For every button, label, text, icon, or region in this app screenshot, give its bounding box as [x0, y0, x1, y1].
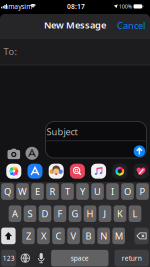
button[interactable]: App Store	[27, 164, 42, 179]
button[interactable]: V	[67, 228, 80, 244]
button[interactable]: Camera	[6, 147, 21, 159]
staticText: Q	[4, 185, 11, 198]
staticText: amaysim	[4, 2, 32, 11]
button[interactable]: Dictate	[37, 253, 45, 264]
button[interactable]: Space	[51, 250, 108, 266]
staticText: M	[115, 230, 123, 242]
button[interactable]: R	[46, 183, 59, 200]
button[interactable]: Music	[91, 164, 106, 178]
staticText: 08:17	[67, 2, 85, 11]
staticText: O	[124, 185, 131, 198]
button[interactable]: F	[54, 205, 66, 222]
staticText: V	[71, 230, 77, 242]
button[interactable]: Next keyboard	[20, 253, 30, 263]
button[interactable]: Return	[114, 250, 149, 266]
button[interactable]: K	[114, 205, 126, 222]
button[interactable]: T	[61, 183, 74, 200]
button[interactable]: Numbers	[1, 250, 16, 266]
button[interactable]: Cancel	[117, 19, 145, 32]
staticText: R	[49, 185, 55, 198]
button[interactable]: X	[37, 228, 50, 244]
button[interactable]: M	[112, 228, 125, 244]
staticText: K	[117, 207, 123, 220]
button[interactable]: W	[16, 183, 29, 200]
button[interactable]: B	[82, 228, 95, 244]
staticText: X	[41, 230, 46, 242]
staticText: L	[132, 207, 137, 220]
staticText: T	[65, 185, 70, 198]
button[interactable]: Send	[134, 145, 145, 157]
button[interactable]: To	[0, 39, 150, 65]
staticText: return	[122, 254, 142, 263]
button[interactable]: G	[69, 205, 81, 222]
staticText: P	[139, 185, 145, 198]
staticText: H	[86, 207, 93, 220]
staticText: Cancel	[117, 19, 145, 32]
button[interactable]: Delete	[134, 228, 149, 244]
staticText: To:	[3, 45, 17, 57]
button[interactable]: Digital Touch	[134, 164, 148, 178]
staticText: G	[71, 207, 78, 220]
button[interactable]: Fitness	[112, 164, 127, 179]
button[interactable]: A	[9, 205, 21, 222]
button[interactable]: P	[136, 183, 149, 200]
staticText: J	[103, 207, 106, 220]
staticText: D	[41, 207, 48, 220]
staticText: space	[71, 254, 89, 263]
button[interactable]: iMessage apps	[25, 147, 38, 160]
button[interactable]: D	[39, 205, 51, 222]
button[interactable]: L	[129, 205, 141, 222]
staticText: F	[57, 207, 62, 220]
staticText: E	[35, 185, 40, 198]
button[interactable]: N	[97, 228, 110, 244]
button[interactable]: C	[52, 228, 65, 244]
button[interactable]: Z	[22, 228, 35, 244]
button[interactable]: I	[106, 183, 119, 200]
staticText: N	[100, 230, 107, 242]
staticText: W	[18, 185, 27, 198]
button[interactable]: Subject	[45, 122, 146, 158]
button[interactable]: Shift	[1, 228, 16, 244]
staticText: U	[94, 185, 101, 198]
button[interactable]: Photos	[6, 164, 21, 178]
staticText: Z	[26, 230, 31, 242]
staticText: I	[111, 185, 114, 198]
button[interactable]: Q	[1, 183, 14, 200]
button[interactable]: J	[99, 205, 111, 222]
button[interactable]: Y	[76, 183, 89, 200]
staticText: S	[27, 207, 32, 220]
staticText: 100%	[119, 3, 132, 10]
staticText: B	[86, 230, 92, 242]
button[interactable]: U	[91, 183, 104, 200]
button[interactable]: S	[24, 205, 36, 222]
staticText: A	[12, 207, 18, 220]
button[interactable]: H	[84, 205, 96, 222]
button[interactable]: E	[31, 183, 44, 200]
staticText: Subject	[46, 125, 77, 138]
button[interactable]: O	[121, 183, 134, 200]
button[interactable]: Images	[70, 164, 85, 178]
staticText: C	[55, 230, 61, 242]
staticText: 123	[3, 254, 15, 263]
staticText: Y	[80, 185, 85, 198]
staticText: New Message	[44, 19, 106, 31]
button[interactable]: Memoji	[49, 164, 64, 179]
